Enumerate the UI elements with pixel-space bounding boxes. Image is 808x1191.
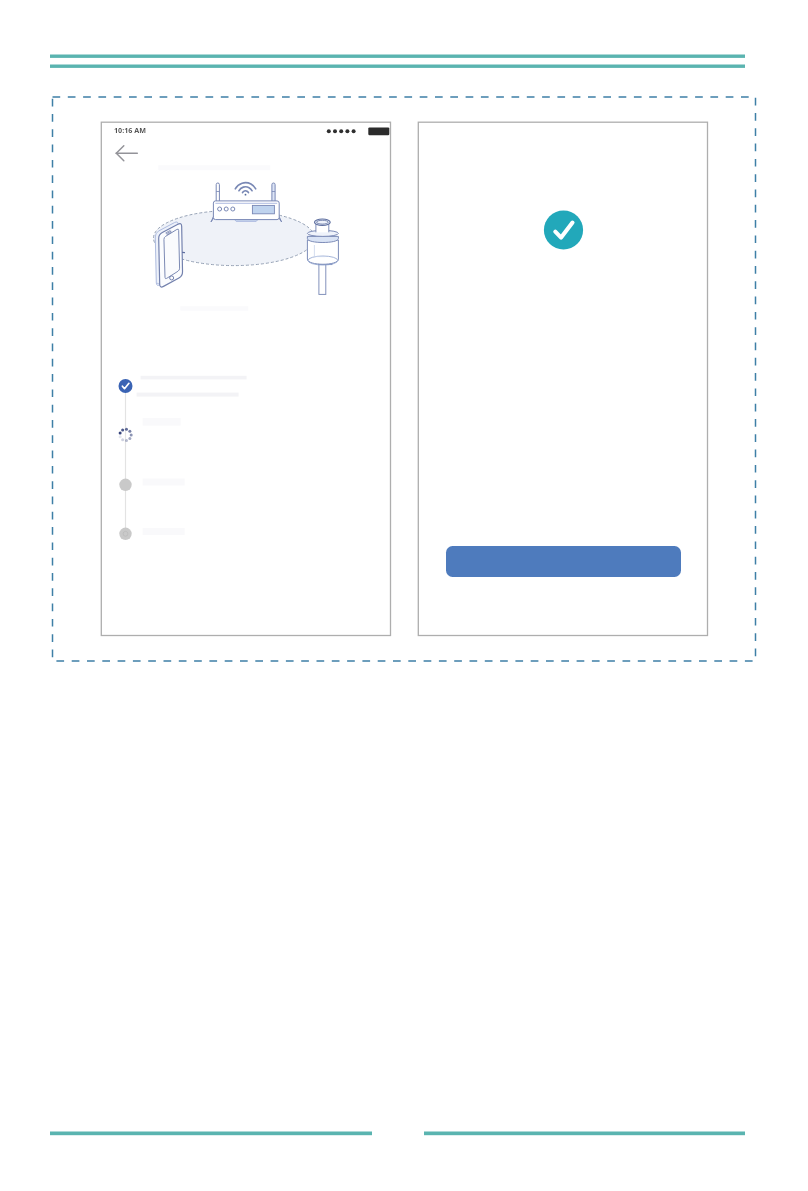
button[interactable]: Back [109,142,143,164]
button[interactable]: Done [446,546,681,577]
button[interactable]: Setup step 2 [116,424,266,446]
button[interactable]: Setup step 1 [116,375,266,397]
button[interactable]: Setup step 3 [116,474,266,496]
staticText: 10:16 AM [114,125,147,135]
button[interactable]: Setup complete [544,210,584,250]
button[interactable]: Setup step 4 [116,523,266,545]
